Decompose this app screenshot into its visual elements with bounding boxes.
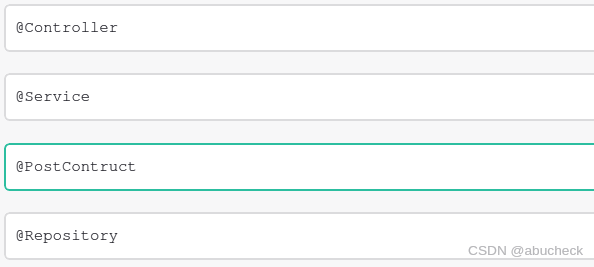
button[interactable]: @PostContruct bbox=[4, 143, 594, 191]
staticText: @Repository bbox=[15, 228, 118, 244]
staticText: @Service bbox=[15, 89, 90, 105]
staticText: CSDN @abucheck bbox=[468, 243, 584, 258]
button[interactable]: @Controller bbox=[4, 4, 594, 52]
button[interactable]: @Repository bbox=[4, 212, 594, 260]
staticText: @Repository bbox=[15, 228, 118, 244]
staticText: @PostContruct bbox=[15, 159, 137, 175]
staticText: @PostContruct bbox=[15, 159, 137, 175]
staticText: @Controller bbox=[15, 20, 118, 36]
button[interactable]: @Service bbox=[4, 73, 594, 121]
staticText: @Controller bbox=[15, 20, 118, 36]
staticText: @Service bbox=[15, 89, 90, 105]
